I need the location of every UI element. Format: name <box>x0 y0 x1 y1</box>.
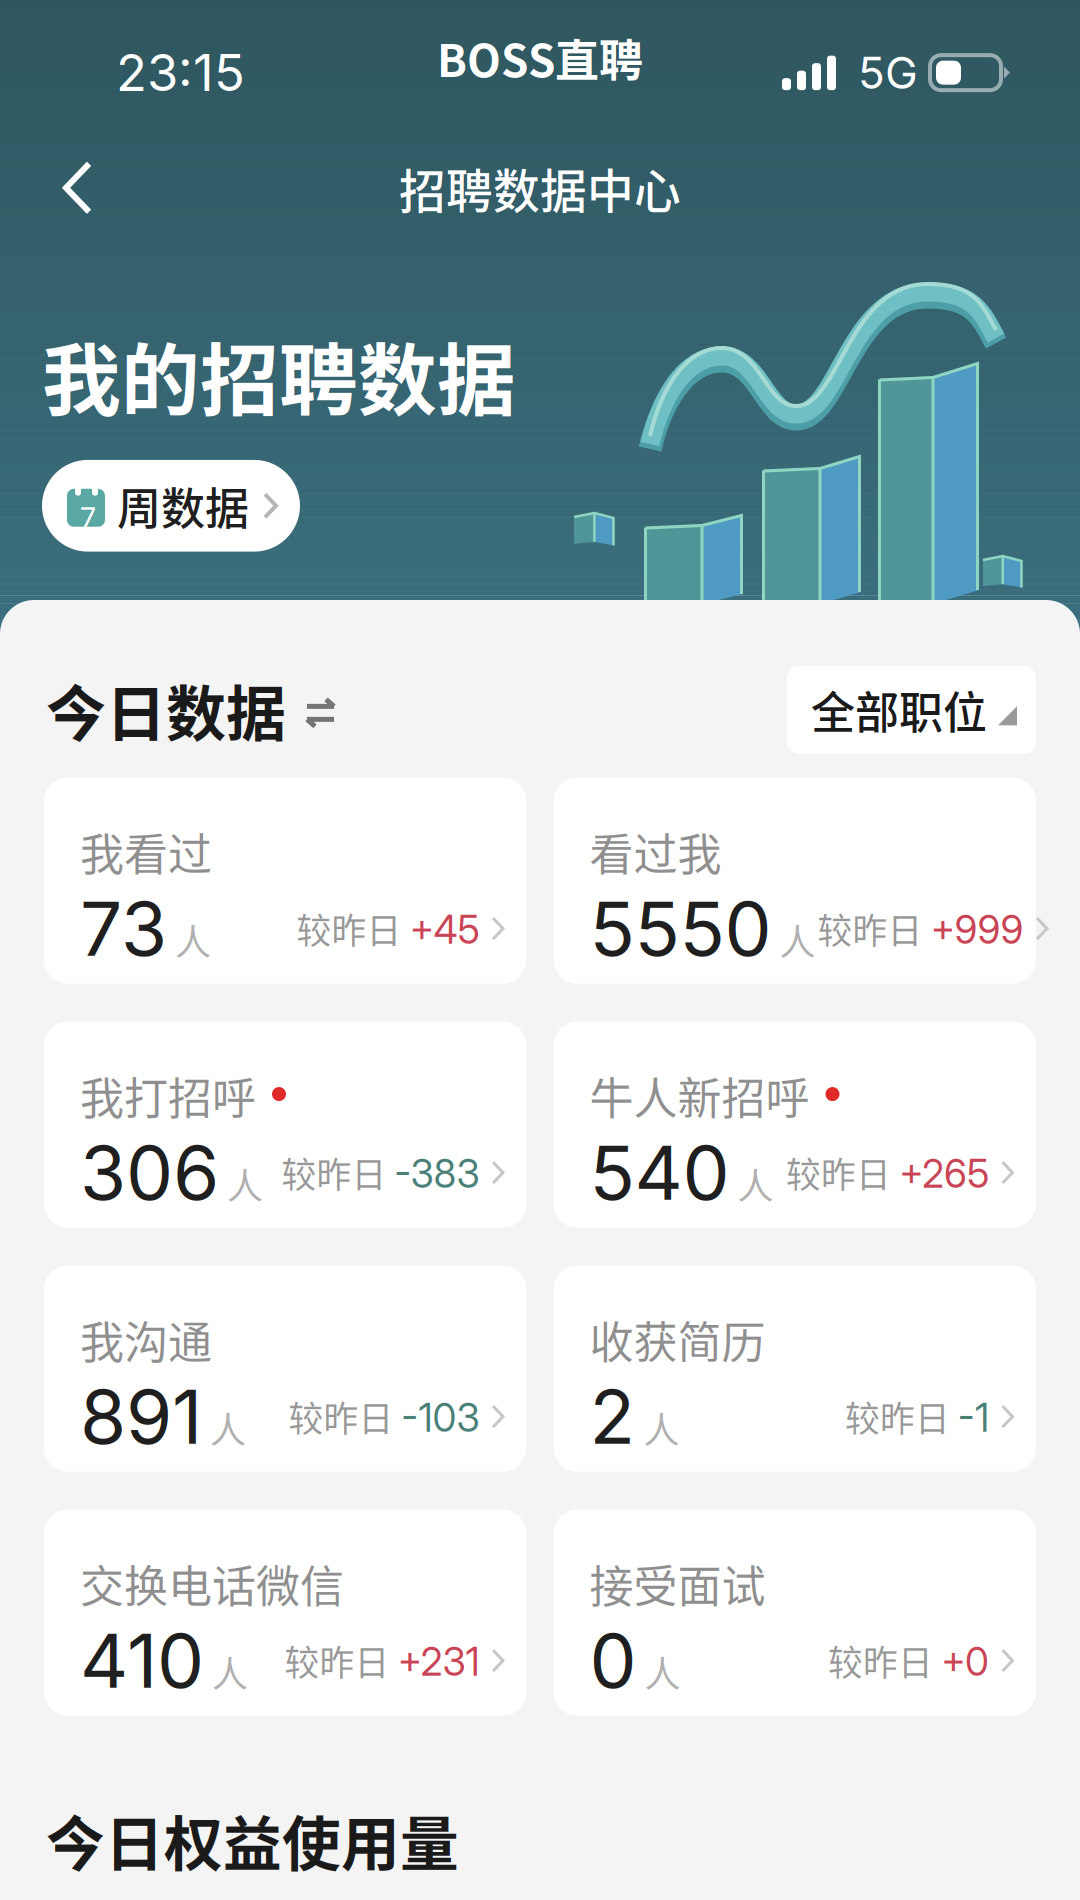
staticText: 较昨日 <box>817 903 930 954</box>
staticText: -1 <box>958 1394 989 1441</box>
staticText: -103 <box>401 1394 479 1441</box>
staticText: 较昨日 <box>828 1635 941 1686</box>
button[interactable]: 7 <box>42 460 300 552</box>
button[interactable]: 我看过 <box>44 778 526 984</box>
staticText: 较昨日 <box>296 903 409 954</box>
staticText: 我的招聘数据 <box>42 318 516 432</box>
staticText: 看过我 <box>589 820 721 883</box>
staticText: 891 <box>80 1371 202 1462</box>
staticText: +0 <box>941 1638 989 1685</box>
staticText: 较昨日 <box>786 1147 899 1198</box>
staticText: 540 <box>589 1127 729 1218</box>
button[interactable]: 收获简历 <box>553 1266 1036 1472</box>
button[interactable]: 接受面试 <box>553 1510 1036 1716</box>
staticText: 5550 <box>589 883 771 974</box>
staticText: 今日数据 <box>46 666 286 753</box>
staticText: +45 <box>409 906 479 953</box>
button[interactable]: 交换电话微信 <box>44 1510 526 1716</box>
staticText: 人 <box>729 1158 773 1210</box>
staticText: 收获简历 <box>589 1308 765 1371</box>
staticText: 410 <box>80 1615 204 1706</box>
staticText: 73 <box>80 883 167 974</box>
staticText: 较昨日 <box>845 1391 958 1442</box>
staticText: 全部职位 <box>811 678 987 742</box>
button[interactable]: 我打招呼 <box>44 1022 526 1228</box>
button[interactable]: 我沟通 <box>44 1266 526 1472</box>
staticText: 人 <box>636 1646 680 1698</box>
staticText: 人 <box>219 1158 263 1210</box>
button[interactable]: 牛人新招呼 <box>553 1022 1036 1228</box>
staticText: 人 <box>635 1402 679 1454</box>
staticText: 我打招呼 <box>80 1064 256 1127</box>
staticText: 牛人新招呼 <box>589 1064 809 1127</box>
staticText: 7 <box>80 501 96 536</box>
staticText: 23:15 <box>116 42 245 103</box>
staticText: 交换电话微信 <box>80 1552 344 1615</box>
button[interactable]: 全部职位 <box>787 666 1036 754</box>
staticText: 招聘数据中心 <box>399 154 681 222</box>
staticText: 人 <box>771 914 815 966</box>
staticText: +999 <box>930 906 1023 953</box>
staticText: 周数据 <box>117 474 249 538</box>
button[interactable]: 返回 <box>40 161 116 215</box>
staticText: 人 <box>204 1646 248 1698</box>
staticText: +231 <box>397 1638 479 1685</box>
staticText: 我看过 <box>80 820 212 883</box>
staticText: 306 <box>80 1127 219 1218</box>
staticText: 2 <box>589 1371 635 1462</box>
staticText: 0 <box>589 1615 636 1706</box>
staticText: -383 <box>394 1150 479 1197</box>
staticText: 接受面试 <box>589 1552 765 1615</box>
staticText: BOSS直聘 <box>437 26 643 90</box>
staticText: 今日权益使用量 <box>46 1798 459 1883</box>
staticText: 较昨日 <box>288 1391 401 1442</box>
button[interactable]: 看过我 <box>553 778 1036 984</box>
staticText: 人 <box>202 1402 246 1454</box>
staticText: 较昨日 <box>284 1635 397 1686</box>
staticText: 5G <box>858 46 918 99</box>
staticText: 人 <box>167 914 211 966</box>
staticText: 我沟通 <box>80 1308 212 1371</box>
button[interactable]: 切换数据 <box>286 691 337 728</box>
staticText: +265 <box>899 1150 989 1197</box>
staticText: 较昨日 <box>281 1147 394 1198</box>
